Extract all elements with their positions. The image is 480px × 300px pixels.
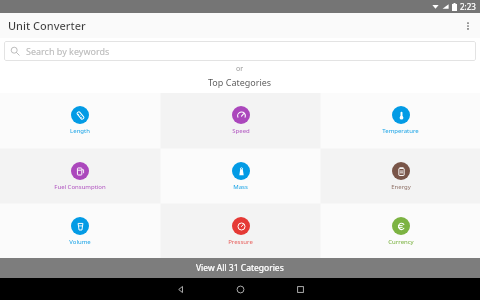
staticText: View All 31 Categories bbox=[196, 262, 284, 274]
staticText: Currency bbox=[388, 238, 414, 246]
staticText: 2:23 bbox=[460, 1, 476, 12]
button[interactable]: More options bbox=[455, 13, 480, 38]
button[interactable]: Currency bbox=[321, 204, 480, 258]
button[interactable]: Pressure bbox=[161, 204, 320, 258]
staticText: Volume bbox=[69, 238, 91, 246]
button[interactable]: Home bbox=[210, 278, 270, 300]
button[interactable]: Volume bbox=[0, 204, 160, 258]
staticText: Mass bbox=[233, 183, 248, 191]
button[interactable]: View All 31 Categories bbox=[0, 258, 480, 278]
button[interactable]: Back bbox=[150, 278, 210, 300]
staticText: or bbox=[236, 64, 244, 74]
button[interactable]: Temperature bbox=[321, 93, 480, 148]
staticText: Length bbox=[70, 127, 90, 135]
button[interactable]: Energy bbox=[321, 149, 480, 203]
staticText: Speed bbox=[232, 127, 250, 135]
button[interactable]: Fuel Consumption bbox=[0, 149, 160, 203]
staticText: Pressure bbox=[228, 238, 253, 246]
staticText: Fuel Consumption bbox=[54, 183, 106, 191]
button[interactable]: Mass bbox=[161, 149, 320, 203]
button[interactable]: Search by keywords bbox=[4, 41, 476, 61]
staticText: Unit Converter bbox=[8, 18, 86, 33]
staticText: Energy bbox=[391, 183, 411, 191]
button[interactable]: Speed bbox=[161, 93, 320, 148]
staticText: Top Categories bbox=[208, 76, 272, 88]
staticText: Search by keywords bbox=[26, 45, 110, 57]
button[interactable]: Length bbox=[0, 93, 160, 148]
button[interactable]: Recent apps bbox=[270, 278, 330, 300]
staticText: Temperature bbox=[382, 127, 419, 135]
